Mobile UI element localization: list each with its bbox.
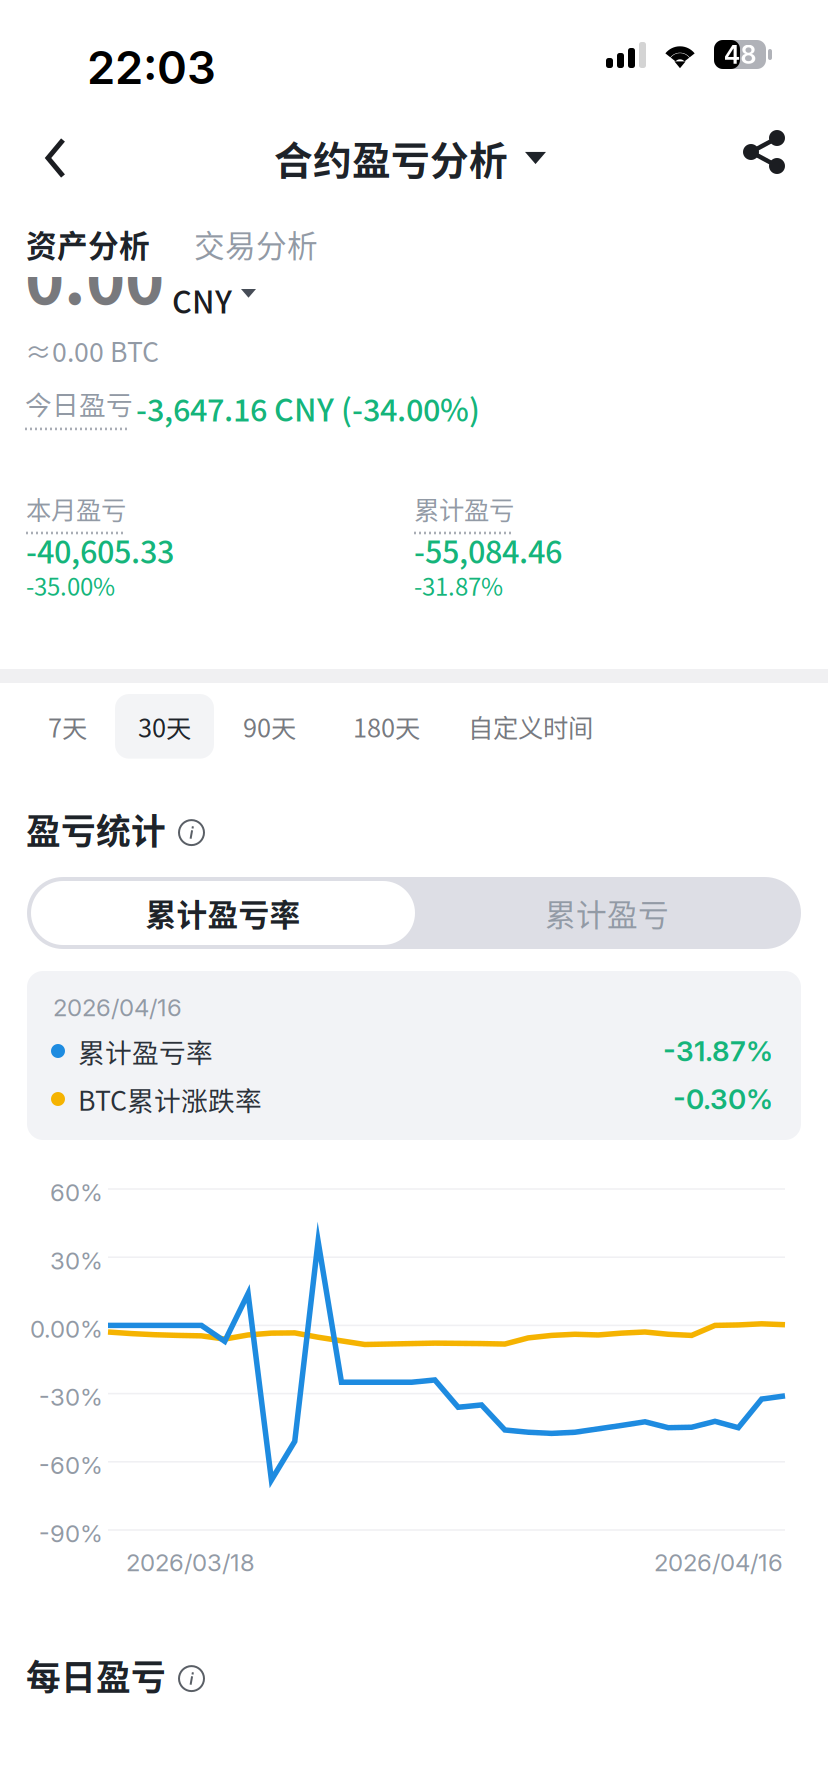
staticText: 30% [50,1246,103,1275]
button[interactable]: Back [32,125,79,191]
staticText: 本月盈亏 [26,490,126,527]
staticText: -90% [39,1519,103,1548]
staticText: 累计盈亏率 [145,891,300,935]
staticText: 资产分析 [26,222,150,266]
button[interactable]: 合约盈亏分析 [268,120,552,196]
staticText: 22:03 [87,40,216,95]
button[interactable]: 30天 [115,694,214,759]
staticText: 自定义时间 [468,708,593,745]
staticText: 合约盈亏分析 [274,130,508,186]
staticText: 今日盈亏 [25,384,133,423]
button[interactable]: 90天 [220,694,319,759]
staticText: 60% [50,1178,103,1207]
staticText: 30天 [138,708,191,745]
button[interactable]: 180天 [330,694,443,759]
staticText: -31.87% [663,1034,773,1068]
button[interactable]: 7天 [26,694,109,759]
staticText: BTC累计涨跌率 [78,1080,262,1118]
staticText: 累计盈亏率 [78,1032,213,1070]
staticText: 2026/04/16 [654,1548,783,1577]
staticText: 交易分析 [194,222,318,266]
staticText: CNY [172,278,232,322]
staticText: 0.00% [30,1314,103,1343]
staticText: 2026/03/18 [126,1548,255,1577]
staticText: -40,605.33 [26,528,174,572]
staticText: -60% [39,1451,103,1480]
staticText: 48 [723,39,756,70]
staticText: 每日盈亏 [26,1650,166,1700]
staticText: 0.00 [25,227,164,323]
staticText: -31.87% [414,568,503,603]
staticText: 7天 [48,708,87,745]
staticText: 盈亏统计 [26,804,166,854]
staticText: -55,084.46 [414,528,562,572]
staticText: -30% [39,1383,103,1412]
staticText: 累计盈亏 [545,891,669,935]
button[interactable]: 资产分析 [0,207,176,281]
staticText: 90天 [243,708,296,745]
button[interactable]: 累计盈亏率 [27,877,801,949]
button[interactable]: 自定义时间 [445,694,616,759]
staticText: 180天 [353,708,420,745]
staticText: -3,647.16 CNY (-34.00%) [136,386,480,430]
staticText: 累计盈亏 [414,490,514,527]
staticText: -0.30% [673,1082,773,1116]
staticText: 2026/04/16 [53,993,182,1022]
staticText: ≈0.00 BTC [25,331,159,370]
button[interactable]: Share [734,119,794,185]
staticText: -35.00% [26,568,115,603]
button[interactable]: 交易分析 [176,207,336,281]
